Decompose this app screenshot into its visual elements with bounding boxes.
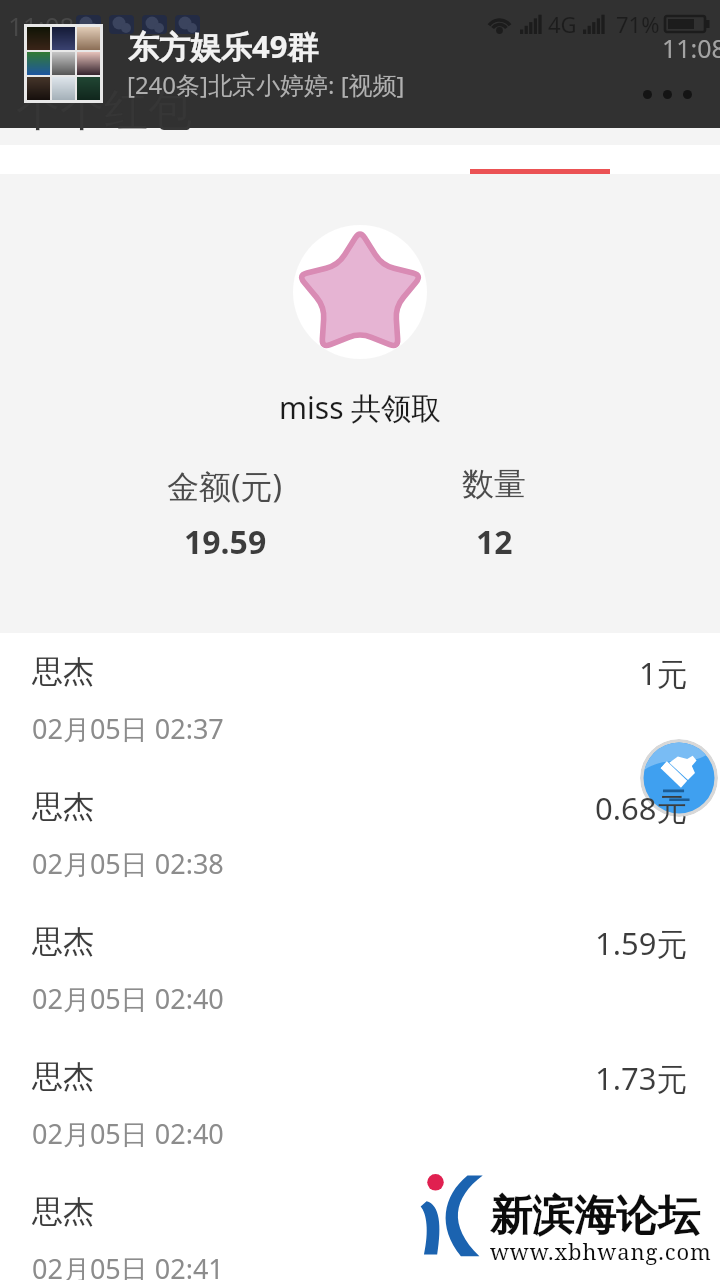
staticText: 思杰	[32, 652, 94, 691]
staticText: 思杰	[32, 1192, 94, 1231]
button[interactable]: 思杰	[0, 1038, 720, 1173]
staticText: 4G	[548, 9, 577, 39]
button[interactable]: 思杰	[0, 903, 720, 1038]
staticText: 11:08	[8, 8, 75, 43]
staticText: 数量	[462, 464, 526, 504]
staticText: 12	[476, 520, 513, 564]
button[interactable]: More options	[637, 84, 698, 105]
button[interactable]: 思杰	[0, 633, 720, 768]
staticText: 0.68元	[595, 787, 688, 829]
button[interactable]: Cleaner	[640, 739, 718, 817]
staticText: 1.73元	[595, 1057, 688, 1099]
staticText: 02月05日 02:37	[32, 710, 224, 747]
staticText: miss 共领取	[279, 387, 442, 428]
staticText: 思杰	[32, 922, 94, 961]
staticText: 1元	[639, 652, 688, 694]
button[interactable]: 思杰	[0, 1173, 720, 1280]
staticText: 思杰	[32, 787, 94, 826]
staticText: 金额(元)	[167, 464, 283, 508]
staticText: 新滨海论坛	[490, 1190, 700, 1243]
staticText: www.xbhwang.com	[490, 1236, 712, 1266]
staticText: [240条]北京小婷婷: [视频]	[127, 68, 405, 101]
staticText: 1.59元	[595, 922, 688, 964]
staticText: 19.59	[184, 520, 267, 564]
button[interactable]: 思杰	[0, 768, 720, 903]
staticText: 71%	[616, 9, 660, 39]
staticText: 思杰	[32, 1057, 94, 1096]
staticText: 02月05日 02:38	[32, 845, 224, 882]
staticText: 02月05日 02:40	[32, 1115, 224, 1152]
staticText: 02月05日 02:40	[32, 980, 224, 1017]
staticText: 东方娱乐49群	[128, 25, 319, 67]
staticText: 个个红包	[16, 83, 192, 138]
staticText: 11:08	[662, 31, 720, 65]
staticText: 02月05日 02:41	[32, 1250, 224, 1280]
